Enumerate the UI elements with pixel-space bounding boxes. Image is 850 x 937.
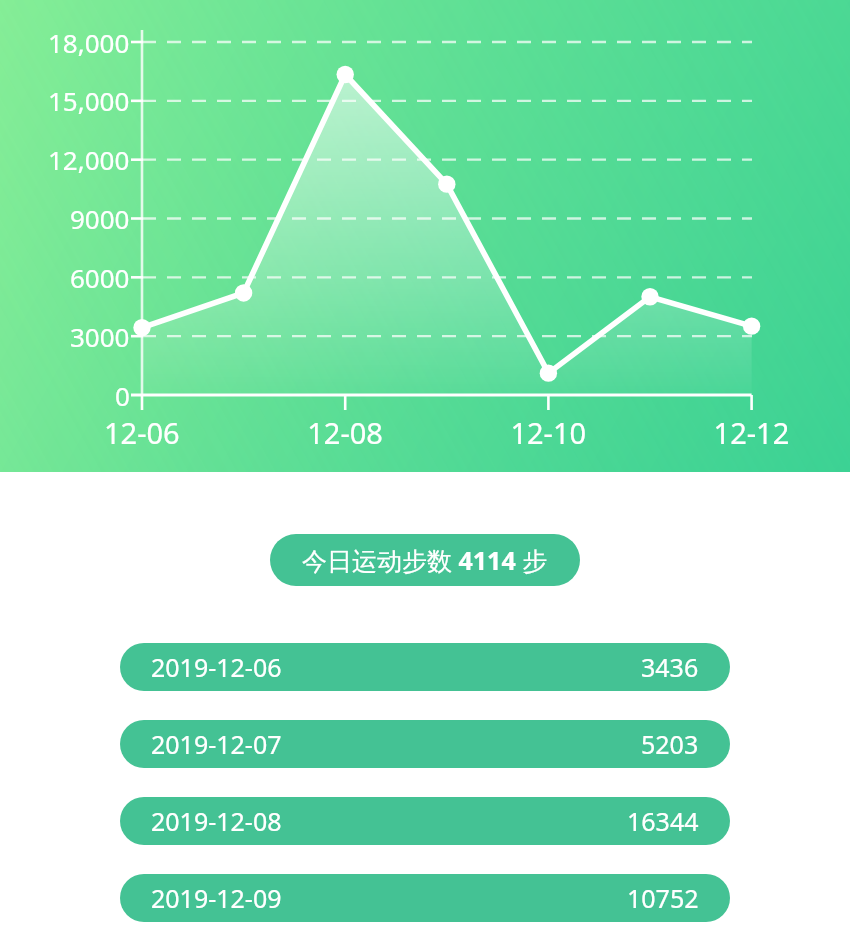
button[interactable]: 2019-12-06 [120, 643, 730, 691]
staticText: 2019-12-09 [151, 881, 282, 915]
staticText: 3436 [641, 650, 699, 684]
staticText: 5203 [641, 727, 699, 761]
button[interactable]: 今日运动步数 4114 步 [270, 534, 580, 586]
staticText: 2019-12-08 [151, 804, 282, 838]
staticText: 2019-12-07 [151, 727, 282, 761]
staticText: 10752 [627, 881, 699, 915]
staticText: 2019-12-06 [151, 650, 282, 684]
other: Weekly step count chart [0, 0, 850, 472]
button[interactable]: 2019-12-09 [120, 874, 730, 922]
staticText: 16344 [627, 804, 699, 838]
staticText: 今日运动步数 4114 步 [302, 543, 548, 577]
button[interactable]: 2019-12-08 [120, 797, 730, 845]
button[interactable]: 2019-12-07 [120, 720, 730, 768]
